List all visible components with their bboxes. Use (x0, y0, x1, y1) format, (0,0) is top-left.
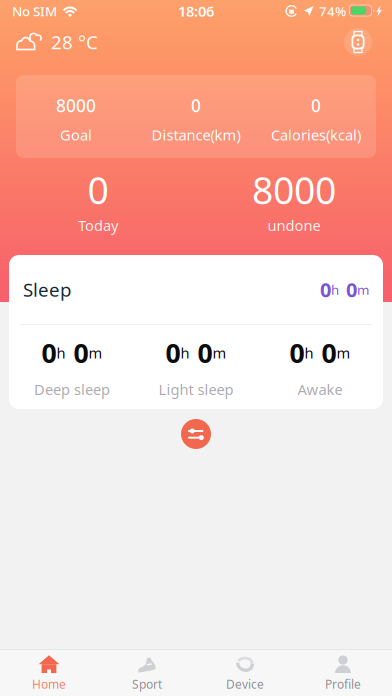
staticText: 74% (319, 2, 346, 20)
staticText: Calories(kcal) (271, 125, 361, 144)
staticText: Today (78, 215, 118, 235)
staticText: 18:06 (178, 1, 214, 21)
staticText: Distance(km) (151, 125, 240, 144)
staticText: 8000 (56, 94, 96, 117)
staticText: Deep sleep (34, 379, 110, 399)
staticText: h (304, 343, 313, 362)
staticText: 28 °C (51, 30, 98, 54)
staticText: 0 (321, 335, 336, 370)
button[interactable]: Device (196, 650, 294, 696)
button[interactable]: My device (341, 25, 375, 59)
staticText: Goal (60, 125, 92, 144)
staticText: h (56, 343, 65, 362)
staticText: undone (267, 215, 320, 235)
staticText: Sport (132, 676, 162, 692)
staticText: Sleep (23, 277, 71, 302)
staticText: Light sleep (158, 379, 233, 399)
staticText: m (336, 343, 350, 362)
staticText: 0 (346, 276, 357, 303)
staticText: Home (32, 676, 66, 692)
staticText: m (212, 343, 226, 362)
staticText: h (180, 343, 189, 362)
staticText: No SIM (12, 2, 57, 20)
staticText: m (88, 343, 102, 362)
staticText: 0 (289, 335, 304, 370)
staticText: 0 (87, 165, 108, 215)
button[interactable]: Adjust data sources (181, 419, 211, 449)
staticText: 8000 (252, 165, 336, 215)
staticText: 0 (197, 335, 212, 370)
staticText: Profile (325, 676, 361, 692)
staticText: 0 (191, 94, 201, 117)
staticText: 0 (320, 276, 331, 303)
staticText: 0 (41, 335, 56, 370)
staticText: 0 (73, 335, 88, 370)
staticText: Device (226, 676, 264, 692)
button[interactable]: Sport (98, 650, 196, 696)
staticText: 0 (165, 335, 180, 370)
staticText: 0 (311, 94, 321, 117)
staticText: m (357, 281, 369, 298)
staticText: h (331, 281, 339, 298)
button[interactable]: Profile (294, 650, 392, 696)
button[interactable]: Home (0, 650, 98, 696)
staticText: Awake (297, 379, 342, 399)
